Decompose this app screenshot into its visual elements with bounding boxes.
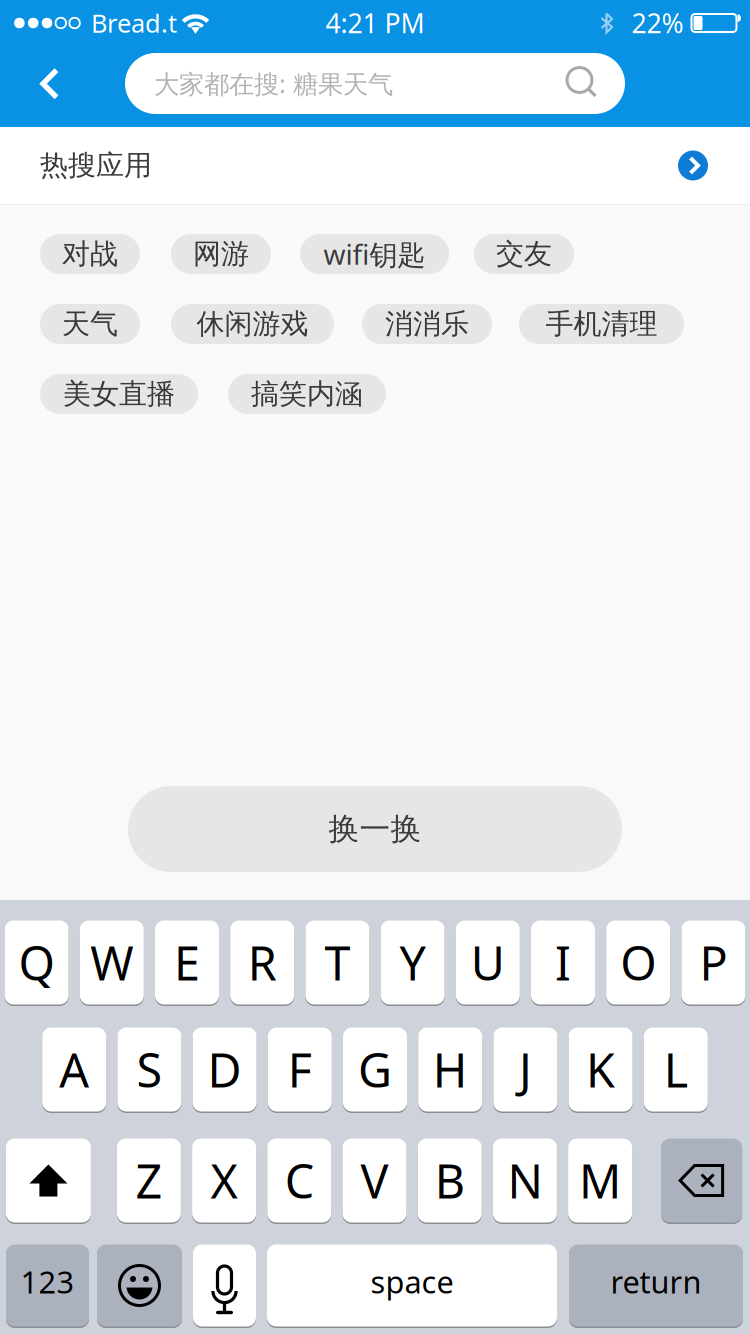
- staticText: 搞笑内涵: [251, 377, 363, 411]
- staticText: L: [664, 1038, 688, 1100]
- staticText: R: [248, 931, 277, 993]
- staticText: G: [358, 1038, 392, 1100]
- button[interactable]: L: [644, 1026, 708, 1113]
- button[interactable]: 消消乐: [362, 304, 492, 344]
- button[interactable]: space: [267, 1243, 557, 1328]
- staticText: 换一换: [328, 810, 421, 848]
- button[interactable]: E: [155, 919, 219, 1006]
- staticText: 消消乐: [385, 307, 469, 341]
- staticText: return: [610, 1261, 701, 1302]
- staticText: 休闲游戏: [196, 307, 308, 341]
- button[interactable]: G: [343, 1026, 407, 1113]
- button[interactable]: 搞笑内涵: [228, 374, 386, 414]
- staticText: W: [90, 931, 133, 993]
- button[interactable]: 换一换: [128, 786, 622, 872]
- button[interactable]: return: [569, 1243, 743, 1328]
- staticText: F: [288, 1038, 312, 1100]
- button[interactable]: Back: [0, 46, 125, 127]
- button[interactable]: S: [117, 1026, 181, 1113]
- staticText: 天气: [62, 307, 118, 341]
- button[interactable]: M: [568, 1137, 632, 1224]
- button[interactable]: V: [342, 1137, 406, 1224]
- staticText: D: [208, 1038, 242, 1100]
- staticText: 网游: [193, 237, 249, 271]
- button[interactable]: H: [418, 1026, 482, 1113]
- staticText: Q: [19, 931, 55, 993]
- staticText: X: [211, 1149, 238, 1211]
- staticText: 美女直播: [63, 377, 175, 411]
- button[interactable]: Delete: [661, 1137, 742, 1224]
- button[interactable]: Z: [117, 1137, 181, 1224]
- staticText: Z: [135, 1149, 162, 1211]
- staticText: P: [699, 931, 727, 993]
- button[interactable]: F: [268, 1026, 332, 1113]
- staticText: C: [285, 1149, 314, 1211]
- staticText: 123: [20, 1261, 74, 1302]
- staticText: Bread.t: [91, 6, 177, 40]
- staticText: 4:21 PM: [325, 5, 424, 41]
- staticText: H: [433, 1038, 468, 1100]
- button[interactable]: I: [531, 919, 595, 1006]
- button[interactable]: X: [192, 1137, 256, 1224]
- staticText: U: [471, 931, 505, 993]
- staticText: 对战: [62, 237, 118, 271]
- button[interactable]: 网游: [171, 234, 271, 274]
- button[interactable]: 交友: [474, 234, 574, 274]
- button[interactable]: 美女直播: [40, 374, 198, 414]
- button[interactable]: 123: [6, 1243, 89, 1328]
- button[interactable]: O: [606, 919, 670, 1006]
- staticText: V: [360, 1149, 388, 1211]
- button[interactable]: 大家都在搜: 糖果天气: [125, 56, 625, 117]
- button[interactable]: Shift: [6, 1137, 91, 1224]
- button[interactable]: W: [80, 919, 144, 1006]
- button[interactable]: U: [456, 919, 520, 1006]
- staticText: 交友: [496, 237, 552, 271]
- staticText: E: [174, 931, 200, 993]
- button[interactable]: Y: [381, 919, 445, 1006]
- button[interactable]: C: [267, 1137, 331, 1224]
- button[interactable]: P: [681, 919, 745, 1006]
- button[interactable]: Emoji: [97, 1243, 182, 1328]
- button[interactable]: 休闲游戏: [171, 304, 334, 344]
- button[interactable]: wifi钥匙: [300, 234, 449, 274]
- button[interactable]: T: [305, 919, 369, 1006]
- staticText: B: [435, 1149, 465, 1211]
- staticText: Y: [400, 931, 426, 993]
- staticText: K: [586, 1038, 615, 1100]
- staticText: 热搜应用: [40, 148, 152, 183]
- staticText: space: [370, 1261, 453, 1302]
- staticText: T: [324, 931, 350, 993]
- staticText: J: [519, 1038, 532, 1100]
- staticText: 22%: [631, 5, 683, 41]
- staticText: 大家都在搜: 糖果天气: [154, 67, 393, 100]
- button[interactable]: 对战: [40, 234, 140, 274]
- button[interactable]: R: [230, 919, 294, 1006]
- button[interactable]: J: [493, 1026, 557, 1113]
- staticText: O: [620, 931, 656, 993]
- staticText: 手机清理: [545, 307, 657, 341]
- button[interactable]: B: [418, 1137, 482, 1224]
- button[interactable]: Dictation: [193, 1243, 256, 1328]
- staticText: N: [507, 1149, 542, 1211]
- staticText: wifi钥匙: [323, 235, 425, 273]
- staticText: I: [555, 931, 571, 993]
- button[interactable]: 天气: [40, 304, 140, 344]
- button[interactable]: Q: [5, 919, 69, 1006]
- button[interactable]: A: [42, 1026, 106, 1113]
- button[interactable]: K: [569, 1026, 633, 1113]
- staticText: A: [59, 1038, 89, 1100]
- staticText: S: [136, 1038, 162, 1100]
- staticText: M: [579, 1149, 621, 1211]
- button[interactable]: 手机清理: [519, 304, 684, 344]
- button[interactable]: N: [493, 1137, 557, 1224]
- button[interactable]: More hot apps: [678, 150, 708, 180]
- button[interactable]: D: [193, 1026, 257, 1113]
